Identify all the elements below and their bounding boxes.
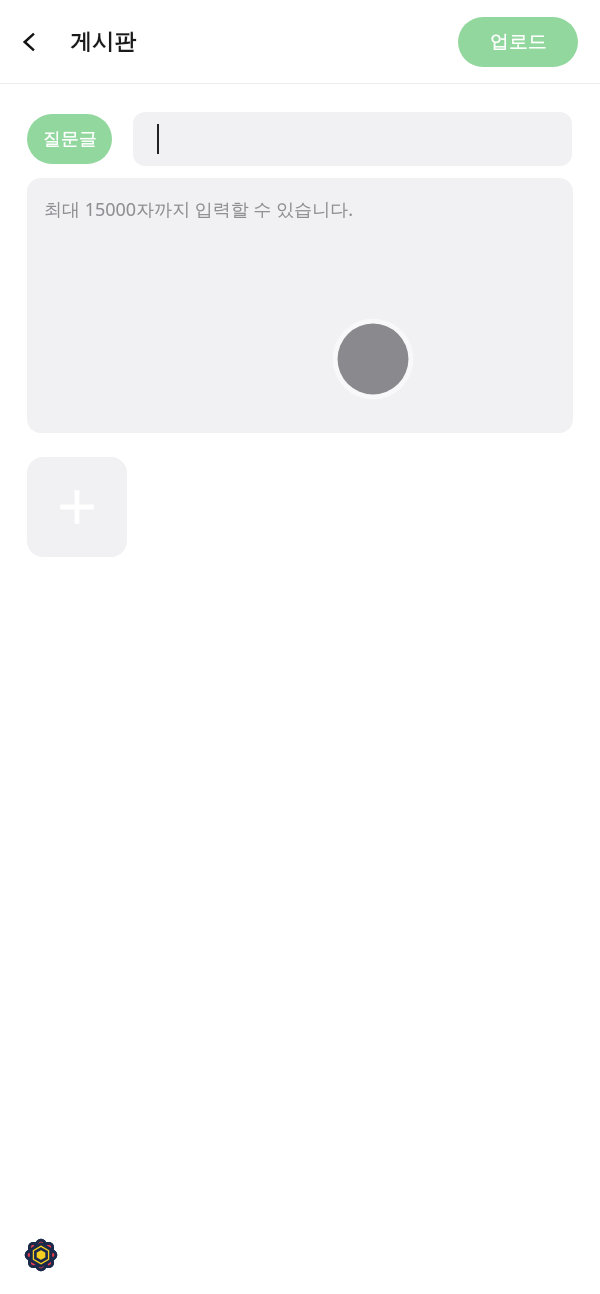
staticText: 게시판 [70, 28, 136, 56]
staticText: 질문글 [43, 128, 97, 151]
staticText: 업로드 [490, 30, 547, 54]
button[interactable]: 질문글 [27, 114, 112, 164]
button[interactable]: 최대 15000자까지 입력할 수 있습니다. [27, 178, 573, 433]
button[interactable]: 업로드 [458, 17, 578, 67]
button[interactable] [133, 112, 572, 166]
staticText: 최대 15000자까지 입력할 수 있습니다. [44, 197, 354, 222]
button[interactable]: Logo [12, 1226, 70, 1284]
button[interactable]: Back [8, 20, 52, 64]
